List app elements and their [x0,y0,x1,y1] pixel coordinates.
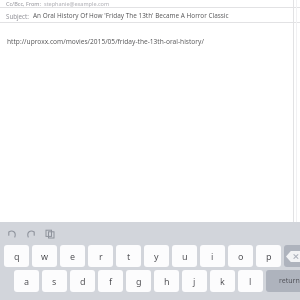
staticText: g [136,275,142,287]
staticText: p [266,250,272,262]
staticText: y [154,250,159,262]
staticText: stephanie@example.com [44,0,110,7]
staticText: http://uproxx.com/movies/2015/05/friday-… [7,37,204,46]
staticText: a [24,275,30,287]
staticText: q [14,250,20,262]
staticText: return [279,276,300,286]
button[interactable]: i [200,245,225,267]
staticText: Cc/Bcc, From: [6,0,41,7]
staticText: d [80,275,86,287]
button[interactable]: p [256,245,281,267]
button[interactable]: Subject: [0,8,300,22]
button[interactable]: q [4,245,29,267]
button[interactable]: http://uproxx.com/movies/2015/05/friday-… [0,23,300,223]
button[interactable]: Undo [5,227,18,240]
button[interactable]: Backspace [284,245,300,267]
button[interactable]: k [210,270,235,292]
staticText: An Oral History Of How 'Friday The 13th'… [33,11,229,20]
staticText: Subject: [6,12,29,20]
staticText: k [220,275,225,287]
button[interactable]: r [88,245,113,267]
staticText: i [211,250,214,262]
button[interactable]: f [98,270,123,292]
staticText: e [70,250,76,262]
button[interactable]: h [154,270,179,292]
button[interactable]: j [182,270,207,292]
staticText: u [182,250,188,262]
staticText: f [109,275,113,287]
button[interactable]: y [144,245,169,267]
button[interactable]: s [42,270,67,292]
staticText: o [238,250,244,262]
button[interactable]: d [70,270,95,292]
button[interactable]: Redo [24,227,37,240]
button[interactable]: u [172,245,197,267]
button[interactable]: Paste [43,227,56,240]
button[interactable]: t [116,245,141,267]
staticText: h [164,275,170,287]
button[interactable]: o [228,245,253,267]
button[interactable]: Cc/Bcc, From: [0,0,300,7]
staticText: r [99,250,103,262]
staticText: w [41,250,49,262]
staticText: t [127,250,131,262]
staticText: s [52,275,57,287]
button[interactable]: return [266,270,300,292]
button[interactable]: w [32,245,57,267]
staticText: j [193,275,196,287]
button[interactable]: a [14,270,39,292]
button[interactable]: l [238,270,263,292]
staticText: l [249,275,252,287]
button[interactable]: e [60,245,85,267]
button[interactable]: g [126,270,151,292]
